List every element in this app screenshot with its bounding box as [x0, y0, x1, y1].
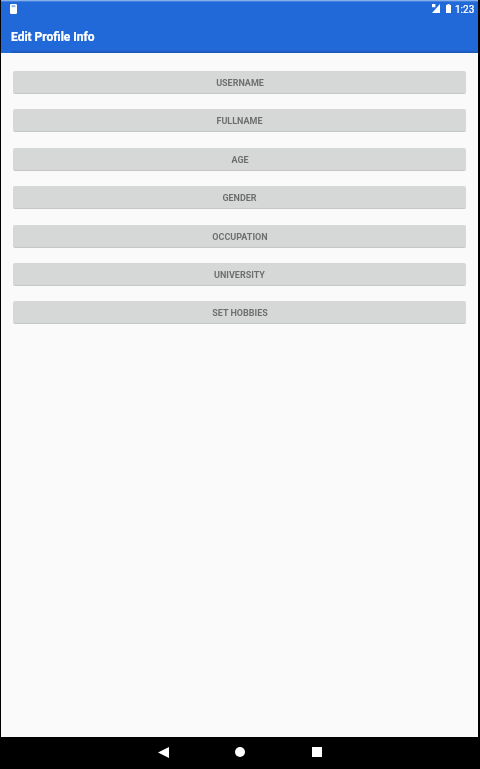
- button[interactable]: SET HOBBIES: [13, 301, 466, 324]
- staticText: UNIVERSITY: [214, 270, 265, 281]
- button[interactable]: UNIVERSITY: [13, 263, 466, 286]
- button[interactable]: Home: [220, 737, 260, 769]
- staticText: GENDER: [222, 193, 257, 204]
- staticText: Edit Profile Info: [11, 30, 95, 44]
- staticText: USERNAME: [216, 78, 264, 89]
- staticText: FULLNAME: [216, 116, 263, 127]
- staticText: OCCUPATION: [212, 232, 268, 243]
- staticText: SET HOBBIES: [212, 308, 268, 319]
- button[interactable]: Recent apps: [296, 737, 336, 769]
- button[interactable]: USERNAME: [13, 71, 466, 94]
- button[interactable]: OCCUPATION: [13, 225, 466, 248]
- button[interactable]: GENDER: [13, 186, 466, 209]
- button[interactable]: Back: [144, 737, 184, 769]
- button[interactable]: FULLNAME: [13, 109, 466, 132]
- staticText: AGE: [231, 155, 249, 166]
- staticText: 1:23: [455, 4, 475, 16]
- button[interactable]: AGE: [13, 148, 466, 171]
